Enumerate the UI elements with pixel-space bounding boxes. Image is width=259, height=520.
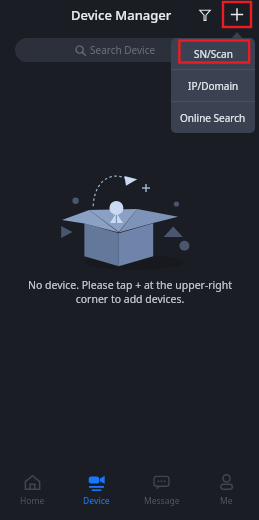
button[interactable]: Filter (194, 4, 216, 26)
button[interactable]: Device (64, 462, 129, 520)
staticText: Me (220, 495, 233, 507)
staticText: IP/Domain (188, 79, 239, 93)
staticText: Home (20, 495, 45, 507)
button[interactable]: Me (194, 462, 259, 520)
staticText: Device Manager (71, 6, 172, 24)
staticText: Device (83, 495, 110, 507)
button[interactable]: SN/Scan (171, 38, 255, 69)
staticText: No device. Please tap + at the upper-rig… (14, 278, 246, 306)
staticText: Online Search (180, 111, 246, 125)
button[interactable]: Online Search (171, 102, 255, 133)
button[interactable]: Search Device (15, 38, 215, 62)
button[interactable]: Home (0, 462, 64, 520)
button[interactable]: Add device (223, 2, 251, 27)
staticText: SN/Scan (194, 47, 233, 61)
staticText: Message (144, 495, 180, 507)
button[interactable]: IP/Domain (171, 70, 255, 101)
button[interactable]: Message (129, 462, 194, 520)
staticText: Search Device (90, 43, 156, 57)
